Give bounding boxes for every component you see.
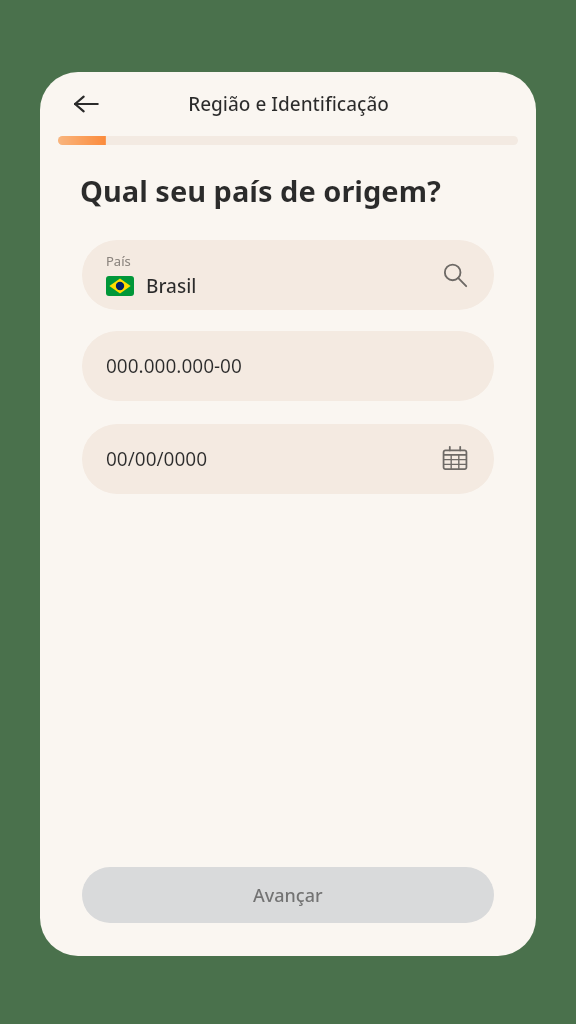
button[interactable]: Selecionar data [438, 442, 472, 476]
staticText: 000.000.000-00 [106, 353, 242, 379]
staticText: Região e Identificação [188, 91, 389, 117]
staticText: Brasil [146, 273, 197, 299]
staticText: 00/00/0000 [106, 446, 438, 472]
button[interactable]: 000.000.000-00 [82, 331, 494, 401]
button[interactable]: 00/00/0000 [82, 424, 494, 494]
button[interactable]: Voltar [62, 80, 110, 128]
staticText: Qual seu país de origem? [80, 171, 441, 210]
button[interactable]: Avançar [82, 867, 494, 923]
staticText: País [106, 252, 131, 270]
button[interactable]: País [82, 240, 494, 310]
button[interactable]: Pesquisar país [438, 258, 472, 292]
staticText: Avançar [253, 883, 323, 908]
